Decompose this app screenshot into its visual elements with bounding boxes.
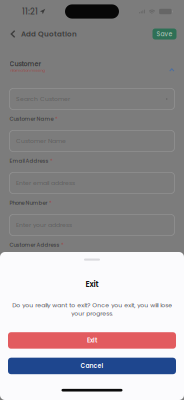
staticText: Search Customer [16,95,70,103]
button[interactable]: Save [152,28,176,39]
staticText: Customer Name [16,137,66,145]
staticText: * [55,115,58,123]
button[interactable]: Back [5,24,21,44]
staticText: Enter email address [16,179,75,187]
staticText: Phone Number [9,199,47,207]
button[interactable]: Exit [8,332,176,349]
staticText: Add Quotation [21,29,77,39]
staticText: 11:21 [22,6,38,17]
staticText: Customer Address [9,241,59,249]
staticText: Customer [9,59,41,68]
staticText: Do you really want to exit? Once you exi… [12,301,172,318]
staticText: * [61,241,64,249]
staticText: Cancel [80,362,103,370]
button[interactable]: Cancel [8,358,176,374]
staticText: Exit [87,336,97,345]
staticText: * [50,157,53,165]
staticText: Save [156,30,172,38]
staticText: * [49,199,52,207]
staticText: Enter your address [16,221,72,229]
staticText: Information missing [9,68,45,73]
staticText: Customer Name [9,115,53,123]
staticText: Exit [85,279,98,290]
staticText: Email Address [9,157,48,165]
